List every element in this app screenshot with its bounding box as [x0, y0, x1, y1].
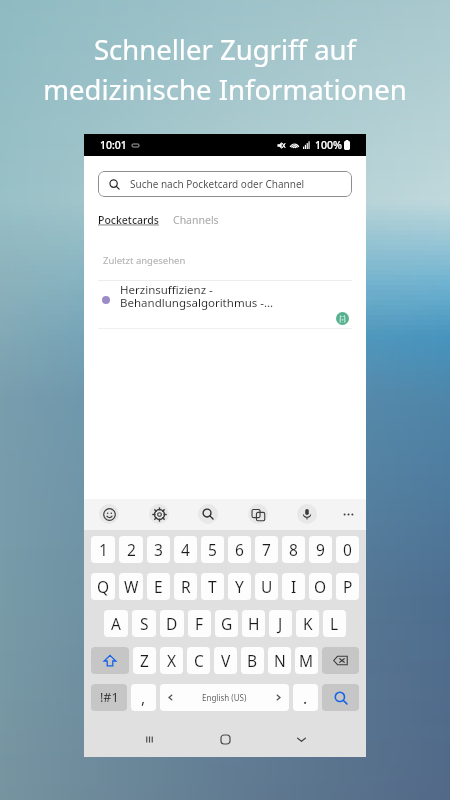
button[interactable]: Keyboard tool [338, 504, 358, 524]
staticText: Q [97, 576, 110, 597]
button[interactable]: G [215, 610, 238, 637]
staticText: B [247, 650, 258, 671]
button[interactable]: L [323, 610, 346, 637]
button[interactable]: E [147, 573, 170, 600]
staticText: F [195, 613, 204, 634]
staticText: M [299, 650, 314, 671]
staticText: L [330, 613, 339, 634]
button[interactable]: I [282, 573, 305, 600]
button[interactable]: B [241, 647, 264, 674]
staticText: 10:01 [100, 138, 127, 152]
button[interactable]: 3 [147, 536, 170, 563]
button[interactable]: P [336, 573, 359, 600]
staticText: 2 [127, 539, 136, 560]
button[interactable] [91, 647, 129, 674]
staticText: Pocketcards [98, 213, 159, 227]
button[interactable]: Keyboard tool [99, 504, 119, 524]
staticText: W [124, 576, 139, 597]
button[interactable]: C [187, 647, 210, 674]
staticText: 6 [235, 539, 244, 560]
button[interactable]: 6 [228, 536, 251, 563]
button[interactable]: 5 [201, 536, 224, 563]
button[interactable]: 4 [174, 536, 197, 563]
button[interactable]: Y [228, 573, 251, 600]
button[interactable]: 1 [91, 536, 115, 563]
button[interactable]: Keyboard tool [248, 504, 268, 524]
button[interactable]: V [214, 647, 237, 674]
staticText: 3 [154, 539, 163, 560]
staticText: 100% [315, 138, 342, 152]
staticText: 0 [343, 539, 352, 560]
button[interactable]: X [160, 647, 183, 674]
button[interactable]: D [160, 610, 184, 637]
staticText: Suche nach Pocketcard oder Channel [130, 177, 305, 191]
button[interactable]: Q [91, 573, 115, 600]
staticText: V [221, 650, 231, 671]
button[interactable]: Z [133, 647, 156, 674]
staticText: R [181, 576, 191, 597]
button[interactable]: 8 [282, 536, 305, 563]
staticText: Y [235, 576, 244, 597]
button[interactable]: W [119, 573, 143, 600]
staticText: A [111, 613, 121, 634]
staticText: 5 [208, 539, 217, 560]
button[interactable]: Suche nach Pocketcard oder Channel [98, 171, 352, 197]
button[interactable]: J [269, 610, 292, 637]
button[interactable]: !#1 [91, 684, 127, 711]
staticText: Z [140, 650, 149, 671]
staticText: P [343, 576, 353, 597]
button[interactable] [214, 728, 236, 750]
button[interactable]: Keyboard tool [198, 504, 218, 524]
staticText: 1 [99, 539, 108, 560]
staticText: !#1 [100, 689, 119, 706]
button[interactable]: 7 [255, 536, 278, 563]
button[interactable] [290, 728, 312, 750]
button[interactable]: 9 [309, 536, 332, 563]
staticText: Zuletzt angesehen [103, 254, 186, 267]
button[interactable]: Pocketcards [98, 213, 159, 227]
button[interactable]: N [268, 647, 291, 674]
staticText: English (US) [202, 692, 247, 703]
button[interactable]: R [174, 573, 197, 600]
staticText: C [194, 650, 204, 671]
staticText: H [248, 613, 260, 634]
button[interactable]: Channels [173, 213, 219, 227]
button[interactable]: H [242, 610, 265, 637]
staticText: 8 [289, 539, 298, 560]
staticText: , [141, 687, 146, 708]
button[interactable]: O [309, 573, 332, 600]
button[interactable]: F [188, 610, 211, 637]
button[interactable]: Herzinsuffizienz - Behandlungsalgorithmu… [84, 280, 366, 328]
button[interactable]: U [255, 573, 278, 600]
staticText: Schneller Zugriff auf medizinische Infor… [0, 31, 450, 108]
staticText: N [274, 650, 286, 671]
button[interactable]: Keyboard tool [149, 504, 169, 524]
staticText: T [208, 576, 217, 597]
staticText: U [261, 576, 273, 597]
staticText: G [221, 613, 233, 634]
button[interactable]: . [293, 684, 318, 711]
button[interactable]: K [296, 610, 319, 637]
button[interactable] [138, 728, 160, 750]
button[interactable] [322, 647, 359, 674]
button[interactable]: , [131, 684, 156, 711]
staticText: X [167, 650, 177, 671]
button[interactable]: M [295, 647, 318, 674]
button[interactable]: T [201, 573, 224, 600]
staticText: D [166, 613, 178, 634]
staticText: 7 [262, 539, 271, 560]
button[interactable]: 2 [119, 536, 143, 563]
staticText: Channels [173, 213, 219, 227]
button[interactable] [322, 684, 359, 711]
button[interactable]: English (US) [160, 684, 289, 711]
staticText: J [278, 613, 283, 634]
staticText: S [140, 613, 149, 634]
staticText: 4 [181, 539, 190, 560]
button[interactable]: A [104, 610, 128, 637]
button[interactable]: Keyboard tool [297, 504, 317, 524]
button[interactable]: 0 [336, 536, 359, 563]
staticText: Herzinsuffizienz - Behandlungsalgorithmu… [120, 282, 274, 310]
staticText: O [314, 576, 327, 597]
button[interactable]: S [132, 610, 156, 637]
staticText: E [154, 576, 163, 597]
